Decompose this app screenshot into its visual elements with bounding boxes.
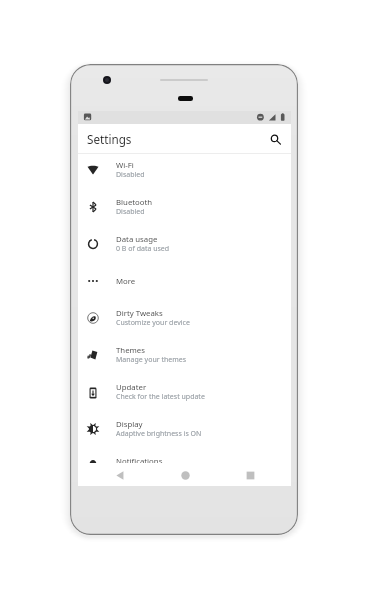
staticText: Display xyxy=(116,419,143,430)
staticText: 0 B of data used xyxy=(116,244,170,254)
button[interactable]: Data usage xyxy=(78,228,291,265)
staticText: Settings xyxy=(87,131,132,147)
staticText: Bluetooth xyxy=(116,197,153,208)
staticText: Check for the latest update xyxy=(116,392,205,402)
staticText: Updater xyxy=(116,382,147,393)
staticText: Disabled xyxy=(116,207,145,217)
staticText: Disabled xyxy=(116,170,145,180)
button[interactable]: Themes xyxy=(78,339,291,376)
button[interactable]: Updater xyxy=(78,376,291,413)
staticText: Customize your device xyxy=(116,318,190,328)
button[interactable]: Back xyxy=(108,464,130,486)
button[interactable]: More xyxy=(78,265,291,302)
button[interactable]: Bluetooth xyxy=(78,191,291,228)
button[interactable]: Dirty Tweaks xyxy=(78,302,291,339)
button[interactable]: Recent apps xyxy=(239,464,261,486)
staticText: Data usage xyxy=(116,234,158,245)
button[interactable]: Search xyxy=(266,130,284,148)
button[interactable]: Home xyxy=(174,464,196,486)
staticText: Dirty Tweaks xyxy=(116,308,163,319)
staticText: More xyxy=(116,276,136,287)
staticText: Adaptive brightness is ON xyxy=(116,429,202,439)
staticText: All apps allowed to send xyxy=(116,466,196,476)
staticText: Themes xyxy=(116,345,145,356)
button[interactable]: Display xyxy=(78,413,291,450)
button[interactable]: Wi-Fi xyxy=(78,154,291,191)
staticText: Wi-Fi xyxy=(116,160,134,171)
staticText: Notifications xyxy=(116,456,163,467)
staticText: Manage your themes xyxy=(116,355,187,365)
button[interactable]: Notifications xyxy=(78,450,291,486)
